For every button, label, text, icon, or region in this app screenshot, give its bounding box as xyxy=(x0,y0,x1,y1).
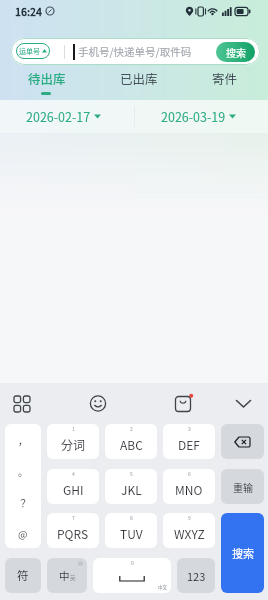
button[interactable]: 运单号 xyxy=(16,43,50,59)
staticText: 0 xyxy=(131,559,134,566)
staticText: 待出库 xyxy=(28,69,66,87)
staticText: 。 xyxy=(18,464,28,478)
staticText: 2026-02-17 xyxy=(26,107,91,125)
staticText: ABC xyxy=(120,436,143,453)
staticText: 英 xyxy=(70,574,76,582)
button[interactable]: 中 xyxy=(47,558,87,593)
button[interactable]: 搜索 xyxy=(216,42,255,62)
button[interactable]: 2026-03-19 xyxy=(134,100,268,133)
staticText: 9 xyxy=(188,514,191,521)
staticText: 1 xyxy=(72,425,75,432)
staticText: 中 xyxy=(59,568,70,583)
button[interactable]: 2 xyxy=(105,424,157,459)
staticText: 123 xyxy=(187,568,206,584)
staticText: 6 xyxy=(188,470,191,477)
staticText: 已出库 xyxy=(120,69,158,87)
staticText: JKL xyxy=(121,481,142,498)
button[interactable]: 2026-02-17 xyxy=(0,100,134,133)
button[interactable]: 9 xyxy=(163,513,215,548)
staticText: 分词 xyxy=(61,436,86,453)
staticText: DEF xyxy=(178,436,200,453)
staticText: MNO xyxy=(175,481,203,498)
staticText: 寄件 xyxy=(212,69,238,87)
button[interactable]: 4 xyxy=(47,469,99,504)
staticText: 7 xyxy=(72,514,75,521)
button[interactable]: 已出库 xyxy=(109,66,169,89)
button[interactable]: ， xyxy=(5,424,41,548)
staticText: 8 xyxy=(130,514,133,521)
button[interactable]: 3 xyxy=(163,424,215,459)
button[interactable]: 运单号 xyxy=(11,38,260,65)
button[interactable] xyxy=(165,388,201,418)
staticText: 4 xyxy=(72,470,75,477)
button[interactable] xyxy=(225,388,261,418)
staticText: 搜索 xyxy=(232,545,254,561)
staticText: 5 xyxy=(130,470,133,477)
button[interactable]: 123 xyxy=(177,558,215,593)
staticText: ， xyxy=(18,433,28,447)
staticText: PQRS xyxy=(57,525,89,542)
staticText: 搜索 xyxy=(226,45,246,59)
staticText: 3 xyxy=(188,425,191,432)
staticText: 16:24 xyxy=(15,4,43,19)
staticText: 中文 xyxy=(158,584,167,591)
staticText: 手机号/快递单号/取件码 xyxy=(78,44,192,59)
button[interactable]: 1 xyxy=(47,424,99,459)
button[interactable]: 7 xyxy=(47,513,99,548)
button[interactable]: 寄件 xyxy=(195,66,255,89)
staticText: 2 xyxy=(130,425,133,432)
staticText: WXYZ xyxy=(174,525,205,542)
button[interactable]: 符 xyxy=(5,558,41,593)
button[interactable]: 待出库 xyxy=(17,66,77,89)
button[interactable] xyxy=(6,388,42,418)
staticText: TUV xyxy=(120,525,143,542)
button[interactable] xyxy=(221,424,264,459)
staticText: 2026-03-19 xyxy=(161,107,226,125)
staticText: 重输 xyxy=(233,480,253,494)
staticText: 运单号 xyxy=(19,46,40,56)
staticText: 符 xyxy=(17,567,29,584)
staticText: GHI xyxy=(63,481,84,498)
button[interactable] xyxy=(80,388,116,418)
staticText: ？ xyxy=(18,495,28,509)
staticText: @ xyxy=(18,526,28,540)
button[interactable]: 搜索 xyxy=(221,513,264,593)
button[interactable]: 0 xyxy=(93,558,171,593)
button[interactable]: 5 xyxy=(105,469,157,504)
button[interactable]: 重输 xyxy=(221,469,264,504)
button[interactable]: 6 xyxy=(163,469,215,504)
button[interactable]: 8 xyxy=(105,513,157,548)
